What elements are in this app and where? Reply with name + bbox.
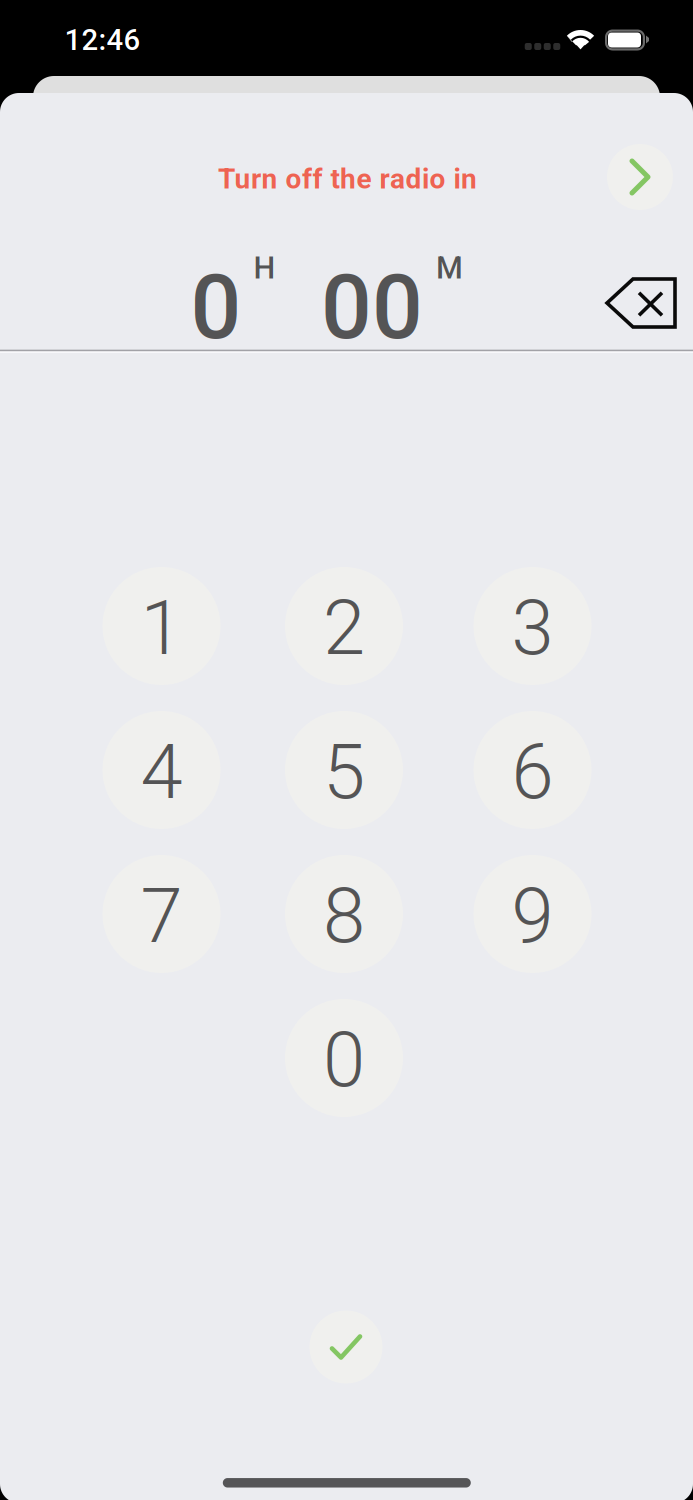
staticText: 6 — [511, 727, 553, 817]
button[interactable]: 6 — [473, 711, 591, 829]
button[interactable]: 5 — [285, 711, 403, 829]
button[interactable]: Confirm — [309, 1310, 382, 1383]
staticText: H — [253, 250, 275, 286]
staticText: 0 — [323, 1015, 365, 1105]
button[interactable]: Next — [607, 144, 673, 210]
staticText: M — [436, 250, 463, 286]
staticText: 8 — [323, 871, 365, 961]
staticText: 2 — [323, 583, 365, 673]
staticText: 4 — [140, 727, 182, 817]
staticText: 00 — [321, 255, 423, 360]
staticText: 1 — [140, 583, 182, 673]
button[interactable]: 7 — [102, 855, 220, 973]
button[interactable]: 0 — [285, 999, 403, 1117]
button[interactable]: 4 — [102, 711, 220, 829]
button[interactable]: 1 — [102, 567, 220, 685]
button[interactable]: 8 — [285, 855, 403, 973]
button[interactable]: 9 — [473, 855, 591, 973]
staticText: 3 — [511, 583, 553, 673]
staticText: 0 — [190, 255, 241, 360]
staticText: 12:46 — [64, 23, 140, 57]
button[interactable]: 3 — [473, 567, 591, 685]
button[interactable]: Delete — [605, 277, 677, 329]
staticText: Turn off the radio in — [218, 163, 477, 195]
button[interactable]: 2 — [285, 567, 403, 685]
staticText: 5 — [323, 727, 365, 817]
staticText: 7 — [140, 871, 182, 961]
staticText: 9 — [511, 871, 553, 961]
